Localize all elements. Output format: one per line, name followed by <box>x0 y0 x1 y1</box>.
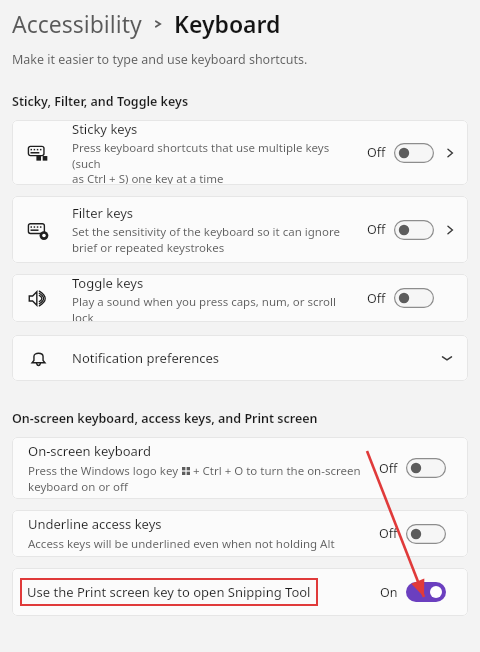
staticText: Off <box>367 290 386 307</box>
staticText: Access keys will be underlined even when… <box>28 536 335 552</box>
staticText: Make it easier to type and use keyboard … <box>12 51 308 68</box>
staticText: On-screen keyboard, access keys, and Pri… <box>12 410 318 427</box>
staticText: On <box>380 584 398 601</box>
staticText: Toggle keys <box>72 274 144 292</box>
button[interactable]: Notification preferences <box>12 335 468 381</box>
staticText: Set the sensitivity of the keyboard so i… <box>72 224 340 255</box>
staticText: On-screen keyboard <box>28 442 151 460</box>
staticText: Press keyboard shortcuts that use multip… <box>72 140 359 185</box>
button[interactable]: Underline access keys <box>12 510 468 557</box>
button[interactable]: Toggle keys <box>12 274 468 322</box>
staticText: Press the Windows logo key <box>28 463 182 479</box>
button[interactable]: Toggle off <box>394 288 434 308</box>
staticText: Off <box>367 144 386 161</box>
staticText: Use the Print screen key to open Snippin… <box>27 583 311 601</box>
staticText: Filter keys <box>72 204 134 222</box>
button[interactable]: Toggle off <box>394 220 434 240</box>
staticText: keyboard on or off <box>28 479 128 495</box>
button[interactable]: Toggle off <box>406 524 446 544</box>
staticText: + Ctrl + O to turn the on-screen <box>190 463 361 479</box>
button[interactable]: Toggle off <box>406 458 446 478</box>
staticText: Off <box>379 460 398 477</box>
staticText: Play a sound when you press caps, num, o… <box>72 294 359 322</box>
staticText: Notification preferences <box>72 349 219 367</box>
staticText: Off <box>367 221 386 238</box>
staticText: Keyboard <box>174 8 281 39</box>
staticText: Off <box>379 525 398 542</box>
button[interactable]: On-screen keyboard <box>12 437 468 499</box>
button[interactable]: Toggle off <box>394 143 434 163</box>
button[interactable]: Filter keys <box>12 196 468 263</box>
button[interactable]: Use the Print screen key to open Snippin… <box>12 568 468 616</box>
staticText: Sticky, Filter, and Toggle keys <box>12 93 189 110</box>
staticText: Underline access keys <box>28 515 162 533</box>
staticText: Sticky keys <box>72 120 138 138</box>
button[interactable]: Toggle on <box>406 582 446 602</box>
button[interactable]: Accessibility <box>12 8 142 39</box>
button[interactable]: Sticky keys <box>12 120 468 185</box>
